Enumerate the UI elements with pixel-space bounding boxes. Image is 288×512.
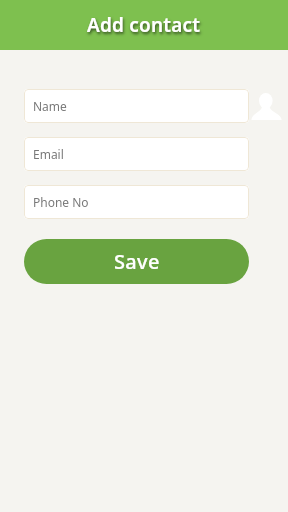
- staticText: Phone No: [33, 194, 89, 210]
- staticText: Add contact: [87, 12, 201, 38]
- staticText: Email: [33, 146, 64, 162]
- staticText: Save: [114, 248, 160, 275]
- button[interactable]: Contact photo: [251, 93, 283, 120]
- button[interactable]: Phone No: [24, 185, 249, 219]
- button[interactable]: Email: [24, 137, 249, 171]
- button[interactable]: Add contact: [0, 0, 288, 50]
- button[interactable]: Save: [24, 239, 249, 284]
- staticText: Name: [33, 98, 67, 114]
- button[interactable]: Name: [24, 89, 249, 123]
